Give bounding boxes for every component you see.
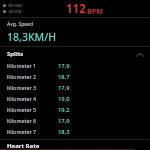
button[interactable]: Kilometer 4 (0, 93, 150, 104)
staticText: Kilometer 1 (7, 62, 37, 69)
staticText: 17,9 (58, 84, 70, 92)
staticText: Splits (7, 50, 24, 58)
button[interactable]: 112 (66, 1, 104, 17)
staticText: Kilometer 5 (7, 106, 37, 113)
button[interactable]: Scroll up (135, 50, 145, 60)
staticText: 18,3KM/H (7, 30, 57, 44)
button[interactable]: Kilometer 3 (0, 82, 150, 93)
button[interactable]: Kilometer 7 (0, 126, 150, 137)
staticText: 19,2 (58, 106, 70, 114)
staticText: Kilometer 4 (7, 95, 37, 102)
staticText: 2M MIN (8, 9, 22, 14)
button[interactable]: Kilometer 5 (0, 104, 150, 115)
staticText: Kilometer 6 (7, 117, 37, 124)
staticText: 19,0 (58, 95, 70, 103)
staticText: 18,7 (58, 73, 70, 81)
button[interactable]: Kilometer 6 (0, 115, 150, 126)
staticText: 4M MAX (8, 3, 23, 8)
button[interactable]: Avg. Speed (0, 18, 150, 46)
button[interactable]: Kilometer 1 (0, 60, 150, 71)
staticText: Kilometer 3 (7, 84, 37, 91)
staticText: 112 (66, 1, 86, 17)
staticText: Kilometer 2 (7, 73, 37, 80)
staticText: Avg. Speed (7, 21, 33, 28)
staticText: Kilometer 7 (7, 128, 37, 135)
staticText: 17,9 (58, 62, 70, 70)
staticText: Heart Rate (7, 142, 40, 150)
staticText: BPM (87, 6, 104, 16)
staticText: 17,9 (58, 117, 70, 125)
button[interactable]: Kilometer 2 (0, 71, 150, 82)
staticText: 18,3 (58, 128, 70, 136)
